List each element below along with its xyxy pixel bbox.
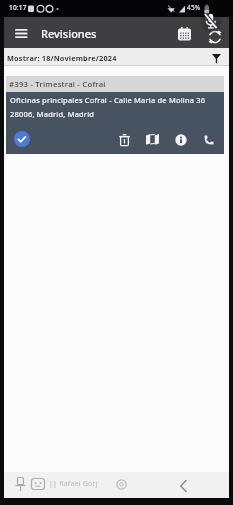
button[interactable] — [176, 26, 193, 42]
button[interactable] — [145, 132, 160, 147]
button[interactable]: #393 - Trimestral - Cofrai — [6, 76, 224, 154]
staticText: #393 - Trimestral - Cofrai — [9, 79, 106, 90]
staticText: Mostrar: 18/Noviembre/2024 — [7, 53, 117, 63]
staticText: 45% — [187, 3, 201, 12]
button[interactable] — [117, 132, 132, 147]
button[interactable] — [206, 28, 224, 45]
staticText: || Rafael Gorj — [49, 479, 98, 489]
button[interactable] — [172, 476, 194, 496]
button[interactable]: Mostrar: 18/Noviembre/2024 — [4, 48, 229, 66]
staticText: 28006, Madrid, Madrid — [10, 109, 95, 119]
button[interactable] — [201, 132, 216, 147]
button[interactable] — [173, 132, 188, 147]
staticText: 10:17 — [9, 3, 27, 12]
staticText: Revisiones — [41, 26, 97, 41]
button[interactable] — [9, 23, 33, 43]
button[interactable] — [14, 131, 30, 147]
staticText: Oficinas principales Cofrai - Calle Mari… — [10, 95, 206, 105]
